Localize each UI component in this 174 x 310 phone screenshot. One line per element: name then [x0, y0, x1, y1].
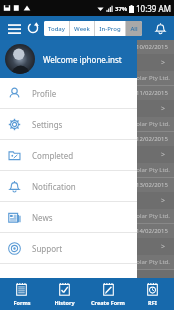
- staticText: News: [32, 212, 53, 223]
- staticText: 37%: [115, 5, 128, 13]
- button[interactable]: Notification: [0, 171, 137, 201]
- staticText: 13/02/2015: [136, 181, 168, 189]
- staticText: >: [161, 242, 166, 252]
- button[interactable]: News: [0, 202, 137, 232]
- button[interactable]: Profile: [0, 78, 137, 108]
- button[interactable]: Settings: [0, 109, 137, 139]
- button[interactable]: RFI: [130, 278, 174, 310]
- staticText: Settings: [32, 119, 63, 130]
- staticText: Today: [48, 25, 65, 33]
- staticText: Solar Pty Ltd.: [133, 212, 170, 220]
- staticText: Completed: [32, 150, 74, 161]
- button[interactable]: Support: [0, 233, 137, 263]
- staticText: >: [161, 150, 166, 160]
- staticText: >: [161, 104, 166, 114]
- staticText: Forms: [13, 299, 31, 306]
- button[interactable]: All: [126, 21, 142, 36]
- staticText: Support: [32, 243, 63, 254]
- button[interactable]: History: [43, 278, 86, 310]
- staticText: Solar Pty Ltd.: [133, 258, 170, 266]
- staticText: >: [161, 196, 166, 206]
- button[interactable]: Today: [44, 21, 69, 36]
- staticText: 10/02/2015: [136, 43, 168, 51]
- staticText: 14/02/2015: [136, 227, 168, 235]
- button[interactable]: Create Form: [86, 278, 130, 310]
- staticText: In-Prog: [99, 25, 121, 33]
- button[interactable]: In-Prog: [95, 21, 125, 36]
- staticText: History: [54, 299, 75, 306]
- staticText: >: [161, 58, 166, 68]
- staticText: Solar Pty Ltd.: [133, 74, 170, 82]
- button[interactable]: Forms: [0, 278, 43, 310]
- staticText: Welcome iphone.inst: [43, 54, 122, 65]
- staticText: 12/02/2015: [136, 135, 168, 143]
- button[interactable]: Menu: [4, 18, 24, 38]
- button[interactable]: Notifications: [150, 18, 170, 38]
- button[interactable]: Completed: [0, 140, 137, 170]
- staticText: Notification: [32, 181, 76, 192]
- staticText: All: [130, 25, 138, 33]
- staticText: Profile: [32, 88, 57, 99]
- staticText: 11/02/2015: [136, 89, 168, 97]
- staticText: Solar Pty Ltd.: [133, 166, 170, 174]
- button[interactable]: Refresh: [24, 19, 42, 37]
- staticText: RFI: [148, 299, 157, 306]
- staticText: Solar Pty Ltd.: [133, 120, 170, 128]
- button[interactable]: Week: [70, 21, 94, 36]
- staticText: 10:39 AM: [136, 3, 171, 14]
- staticText: Week: [74, 25, 90, 33]
- staticText: Create Form: [91, 299, 125, 306]
